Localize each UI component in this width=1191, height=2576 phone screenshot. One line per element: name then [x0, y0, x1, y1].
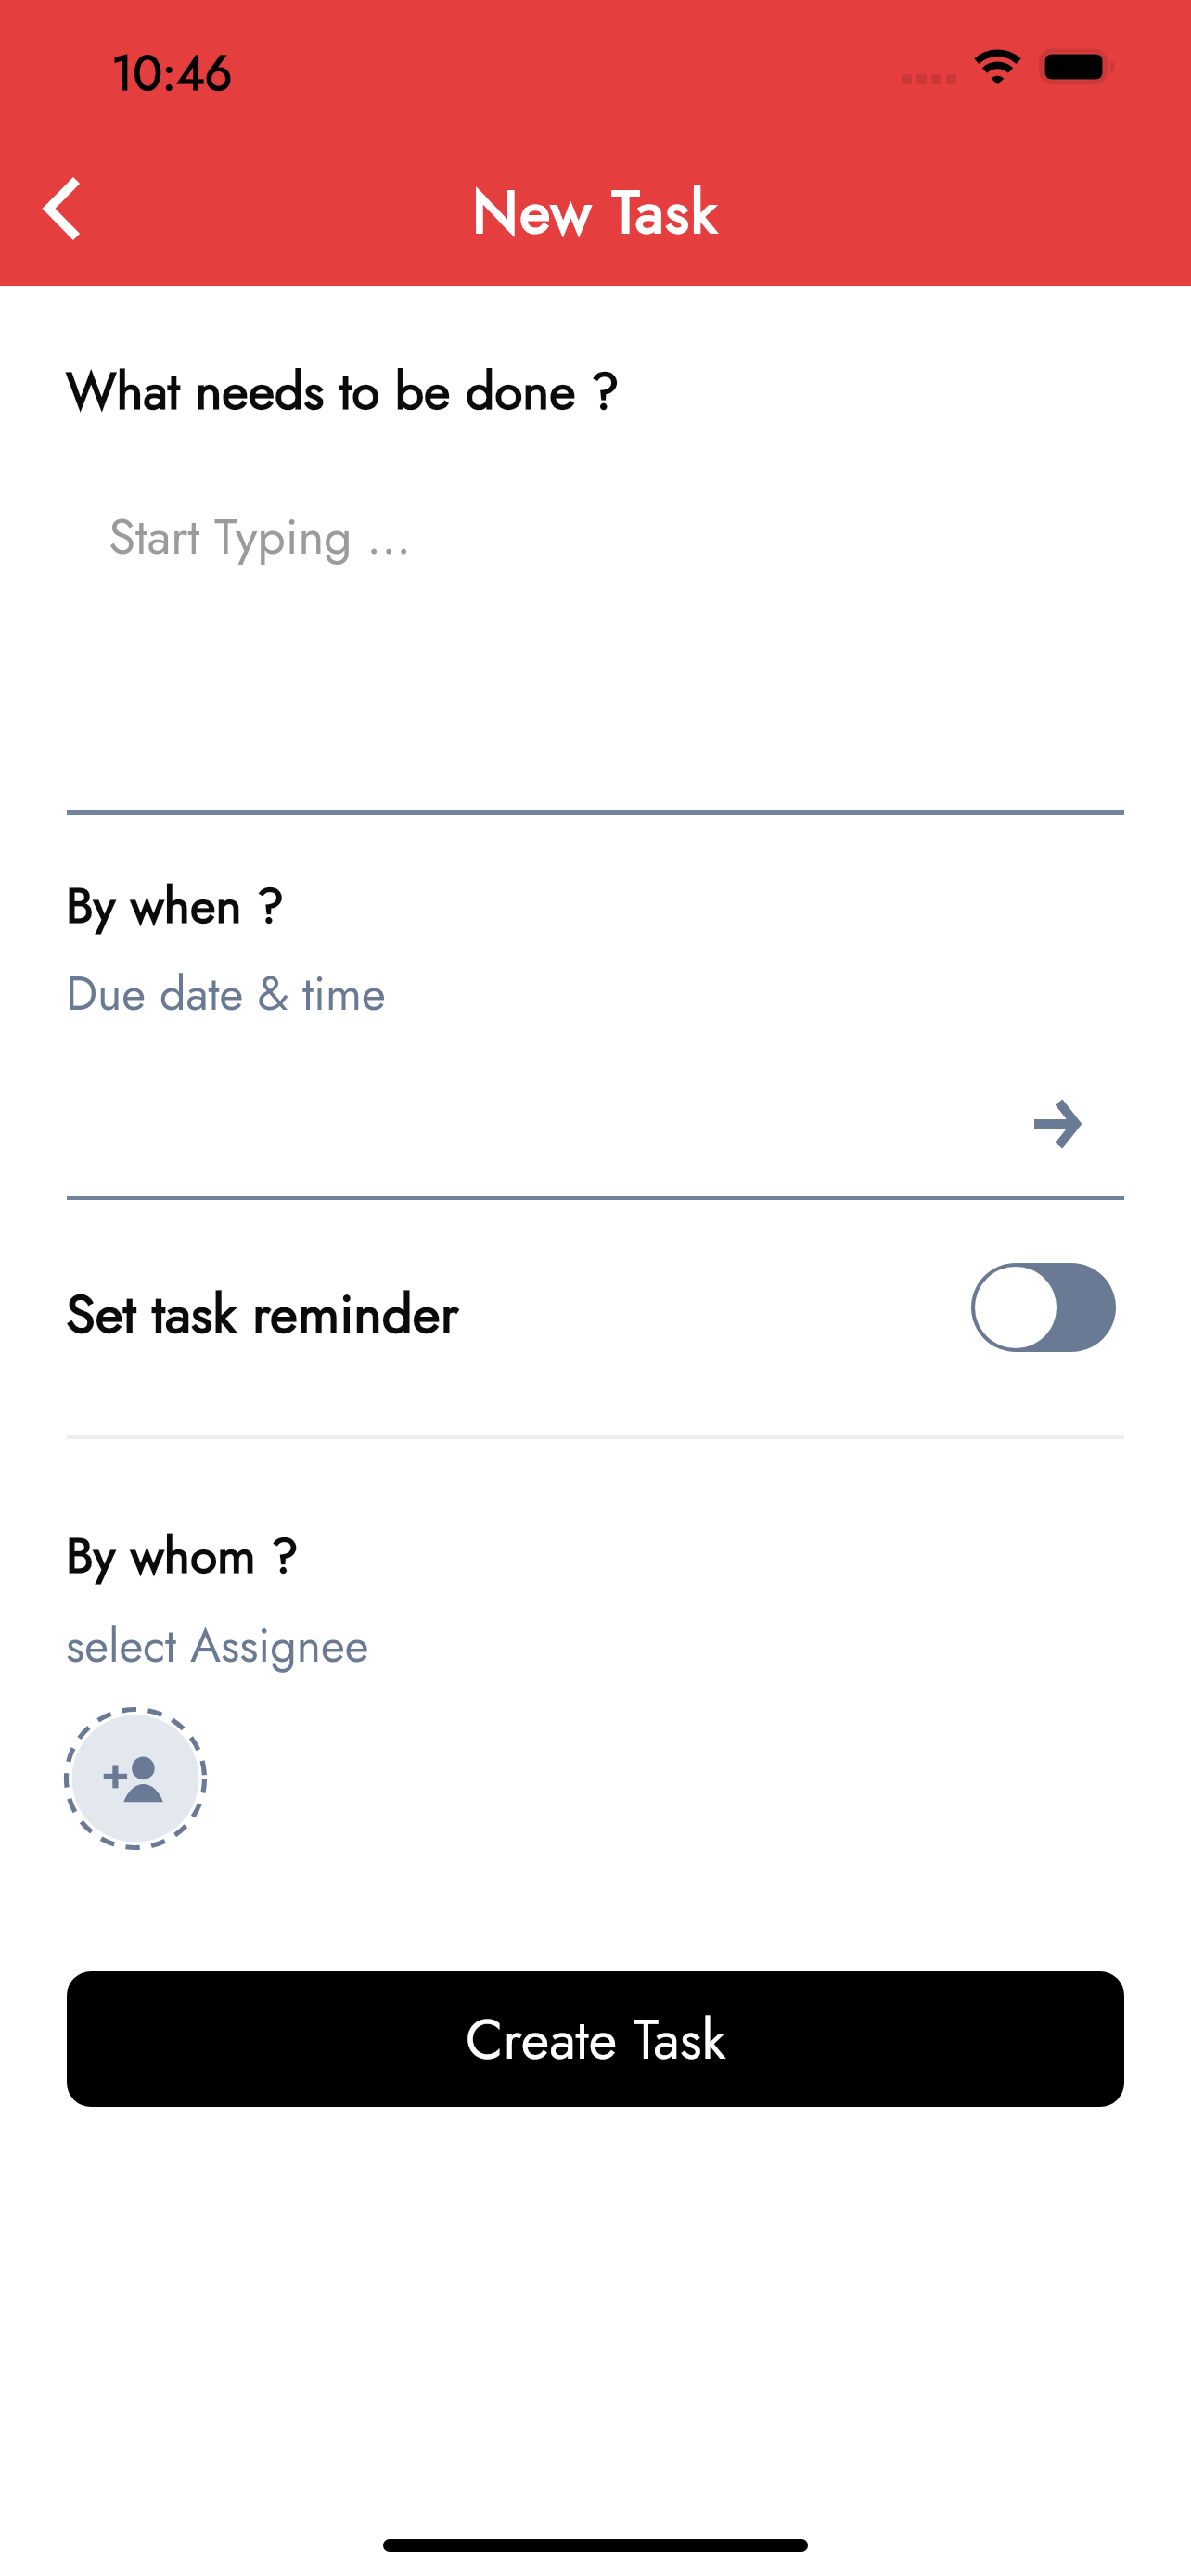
- staticText: By when ?: [66, 870, 285, 941]
- button[interactable]: Back: [0, 153, 121, 264]
- staticText: 10:46: [111, 38, 233, 108]
- button[interactable]: Set task reminder: [66, 1275, 459, 1353]
- staticText: Create Task: [466, 2000, 726, 2079]
- staticText: What needs to be done ?: [66, 354, 620, 427]
- button[interactable]: Choose due date and time: [1011, 1078, 1104, 1170]
- staticText: By whom ?: [66, 1520, 299, 1591]
- button[interactable]: Add assignee: [63, 1706, 208, 1851]
- staticText: select Assignee: [66, 1612, 369, 1678]
- button[interactable]: Start Typing ...: [109, 501, 412, 572]
- button[interactable]: Set task reminder toggle: [971, 1263, 1116, 1352]
- staticText: Due date & time: [66, 960, 386, 1027]
- staticText: New Task: [472, 170, 719, 255]
- button[interactable]: Create Task: [67, 1971, 1124, 2107]
